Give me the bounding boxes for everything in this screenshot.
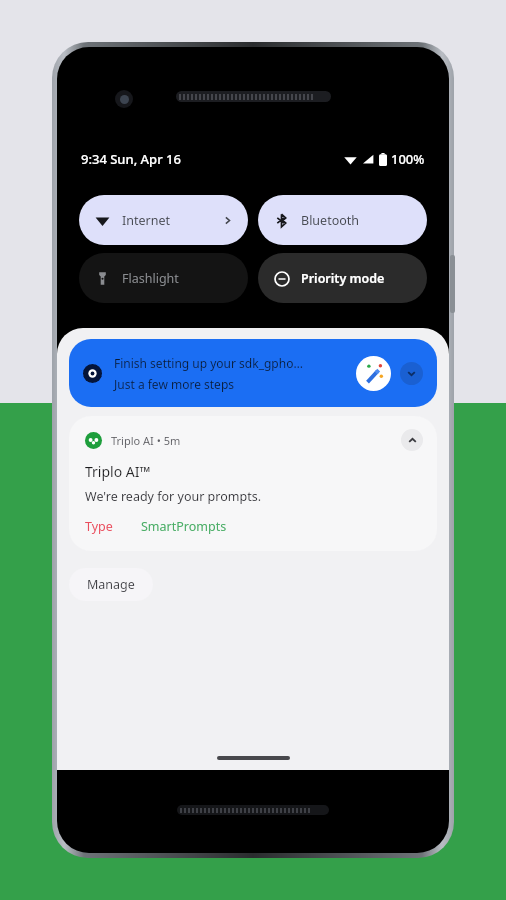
- staticText: Priority mode: [301, 270, 385, 287]
- button[interactable]: Priority mode: [258, 253, 427, 303]
- staticText: 100%: [391, 150, 425, 168]
- staticText: Triplo AI • 5m: [111, 433, 181, 448]
- button[interactable]: Manage: [69, 568, 153, 601]
- staticText: Just a few more steps: [114, 376, 235, 392]
- staticText: We're ready for your prompts.: [85, 488, 261, 505]
- staticText: Flashlight: [122, 270, 179, 287]
- staticText: Triplo AI™: [85, 462, 151, 481]
- button[interactable]: Type: [85, 518, 117, 535]
- staticText: Finish setting up your sdk_gpho…: [114, 355, 303, 371]
- staticText: Bluetooth: [301, 212, 360, 229]
- button[interactable]: Flashlight: [79, 253, 248, 303]
- button[interactable]: Expand: [400, 362, 423, 385]
- staticText: SmartPrompts: [141, 518, 227, 535]
- button[interactable]: Triplo AI • 5m: [69, 416, 437, 551]
- button[interactable]: Collapse: [401, 429, 423, 451]
- button[interactable]: Bluetooth: [258, 195, 427, 245]
- staticText: Type: [85, 518, 113, 535]
- staticText: Internet: [122, 212, 170, 229]
- button[interactable]: SmartPrompts: [141, 518, 227, 535]
- button[interactable]: Finish setting up your sdk_gpho…: [69, 339, 437, 407]
- staticText: 9:34 Sun, Apr 16: [81, 150, 181, 168]
- staticText: Manage: [87, 576, 135, 593]
- button[interactable]: Internet: [79, 195, 248, 245]
